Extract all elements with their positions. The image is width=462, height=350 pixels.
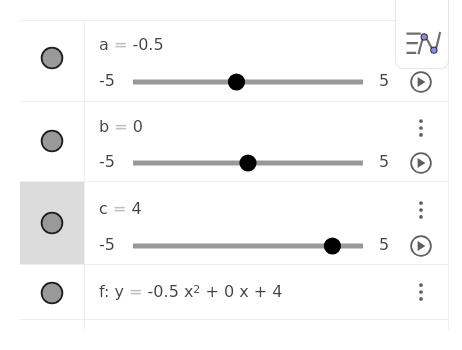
staticText: 5 (379, 235, 390, 254)
staticText: -5 (99, 71, 115, 90)
staticText: c = 4 (99, 199, 142, 218)
staticText: b = 0 (99, 117, 143, 136)
staticText: -5 (99, 152, 115, 171)
button[interactable]: More options for c (408, 197, 433, 222)
button[interactable]: Animate a (408, 69, 433, 94)
button[interactable]: f: y = -0.5 x2 + 0 x + 4 (85, 265, 448, 319)
button[interactable]: More options for f (408, 279, 433, 304)
staticText: a = -0.5 (99, 35, 164, 54)
staticText: 5 (379, 152, 390, 171)
button[interactable]: Switch between algebra and graphing view (395, 0, 449, 69)
button[interactable]: Toggle visibility of f (20, 265, 84, 319)
staticText: 5 (379, 71, 390, 90)
button[interactable]: Slider for a (133, 72, 363, 92)
button[interactable]: Toggle visibility of b (20, 102, 84, 181)
button[interactable]: Animate b (408, 150, 433, 175)
button[interactable]: Slider for c (133, 236, 363, 256)
button[interactable]: Toggle visibility of a (20, 21, 84, 101)
staticText: f: y = -0.5 x2 + 0 x + 4 (99, 282, 283, 301)
button[interactable]: Toggle visibility of c (20, 182, 84, 264)
staticText: -5 (99, 235, 115, 254)
button[interactable]: Slider for b (133, 153, 363, 173)
button[interactable]: More options for b (408, 115, 433, 140)
button[interactable]: Animate c (408, 233, 433, 258)
